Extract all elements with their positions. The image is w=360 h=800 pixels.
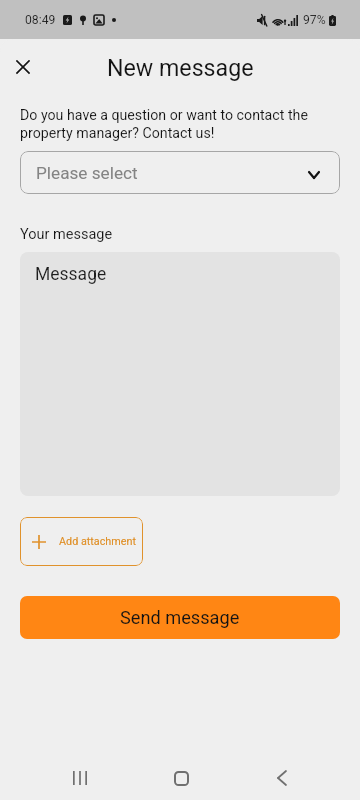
- button[interactable]: Home: [159, 756, 203, 800]
- button[interactable]: Close: [1, 45, 45, 89]
- button[interactable]: Message: [20, 252, 340, 496]
- staticText: Do you have a question or want to contac…: [20, 107, 340, 142]
- button[interactable]: Please select: [20, 151, 340, 194]
- staticText: New message: [107, 54, 254, 81]
- button[interactable]: Send message: [20, 596, 340, 639]
- button[interactable]: Back: [260, 756, 304, 800]
- staticText: 08:49: [25, 13, 56, 27]
- staticText: 97%: [303, 13, 326, 27]
- staticText: Your message: [20, 226, 113, 243]
- button[interactable]: Recents: [58, 756, 102, 800]
- staticText: Send message: [120, 607, 240, 628]
- staticText: Message: [35, 264, 107, 285]
- staticText: Please select: [36, 163, 138, 183]
- staticText: Add attachment: [59, 535, 136, 548]
- button[interactable]: Add attachment: [20, 517, 143, 566]
